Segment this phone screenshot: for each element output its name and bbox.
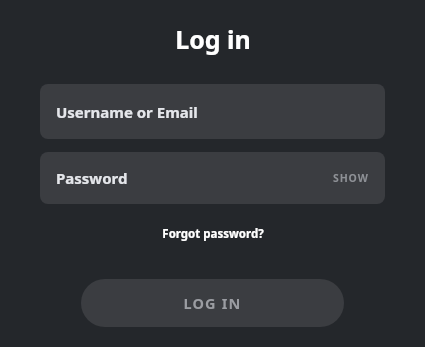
button[interactable]: Username or Email (40, 84, 385, 139)
staticText: SHOW (333, 171, 369, 185)
button[interactable]: Forgot password? (156, 222, 270, 246)
staticText: Log in (175, 22, 251, 56)
staticText: Forgot password? (162, 226, 264, 242)
button[interactable]: Password (40, 152, 385, 204)
button[interactable]: LOG IN (81, 279, 344, 327)
button[interactable]: SHOW (331, 167, 371, 189)
staticText: LOG IN (183, 293, 242, 313)
staticText: Username or Email (56, 102, 198, 122)
staticText: Password (56, 168, 128, 188)
